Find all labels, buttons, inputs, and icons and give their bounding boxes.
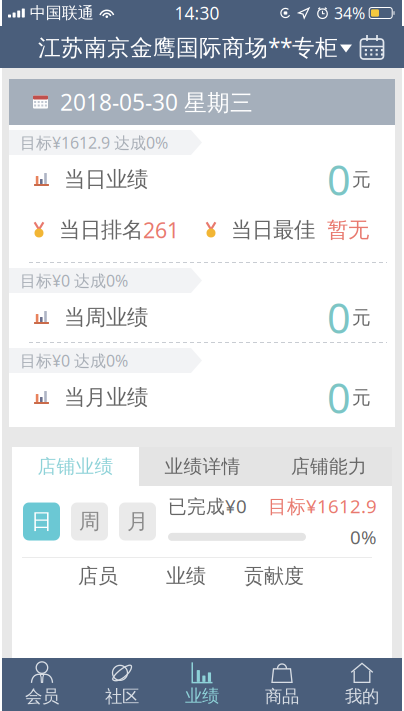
staticText: 店员 bbox=[78, 564, 118, 588]
staticText: 14:30 bbox=[174, 1, 219, 24]
staticText: 当日排名 bbox=[59, 217, 143, 243]
staticText: 店铺能力 bbox=[291, 455, 367, 478]
staticText: 业绩 bbox=[185, 685, 219, 707]
staticText: 元 bbox=[352, 386, 371, 409]
staticText: 目标¥1612.9 达成0% bbox=[20, 132, 168, 153]
staticText: 已完成¥0 bbox=[168, 494, 247, 518]
button[interactable]: 江苏南京金鹰国际商场**专柜 bbox=[0, 24, 352, 70]
staticText: 暂无 bbox=[327, 217, 369, 243]
staticText: 当月业绩 bbox=[64, 384, 148, 411]
staticText: 当周业绩 bbox=[64, 304, 148, 331]
staticText: 目标¥0 达成0% bbox=[20, 270, 128, 291]
button[interactable]: 周 bbox=[71, 502, 108, 540]
staticText: 当日业绩 bbox=[64, 166, 148, 193]
staticText: 34% bbox=[334, 2, 365, 24]
staticText: 业绩 bbox=[166, 564, 206, 588]
staticText: 江苏南京金鹰国际商场**专柜 bbox=[38, 32, 338, 62]
staticText: 2018-05-30 星期三 bbox=[60, 87, 253, 117]
button[interactable]: 店铺能力 bbox=[266, 447, 392, 486]
button[interactable]: 月 bbox=[119, 502, 156, 540]
button[interactable]: 商品 bbox=[242, 658, 322, 711]
staticText: 当日最佳 bbox=[231, 217, 315, 243]
button[interactable]: 业绩 bbox=[162, 658, 242, 711]
staticText: 月 bbox=[127, 508, 148, 535]
staticText: 元 bbox=[352, 168, 371, 191]
button[interactable]: Calendar bbox=[360, 27, 404, 67]
staticText: 贡献度 bbox=[244, 564, 304, 588]
staticText: 0 bbox=[327, 290, 351, 345]
staticText: 会员 bbox=[25, 686, 59, 707]
button[interactable]: 会员 bbox=[2, 658, 82, 711]
staticText: 商品 bbox=[265, 686, 299, 707]
button[interactable]: 我的 bbox=[322, 658, 402, 711]
staticText: 目标¥1612.9 bbox=[268, 494, 377, 518]
staticText: 店铺业绩 bbox=[37, 455, 113, 478]
staticText: 日 bbox=[31, 508, 52, 535]
staticText: 中国联通 bbox=[30, 3, 94, 23]
button[interactable]: 社区 bbox=[82, 658, 162, 711]
staticText: 社区 bbox=[105, 686, 139, 707]
staticText: 0 bbox=[327, 370, 351, 425]
staticText: 元 bbox=[352, 306, 371, 329]
button[interactable]: 日 bbox=[23, 502, 60, 540]
staticText: 0 bbox=[327, 152, 351, 207]
button[interactable]: 店铺业绩 bbox=[12, 447, 139, 486]
staticText: 0% bbox=[350, 524, 377, 549]
staticText: 我的 bbox=[345, 686, 379, 707]
staticText: 目标¥0 达成0% bbox=[20, 350, 128, 371]
staticText: 业绩详情 bbox=[164, 455, 240, 478]
button[interactable]: 业绩详情 bbox=[139, 447, 266, 486]
staticText: 261 bbox=[143, 216, 179, 244]
staticText: 周 bbox=[79, 508, 100, 535]
